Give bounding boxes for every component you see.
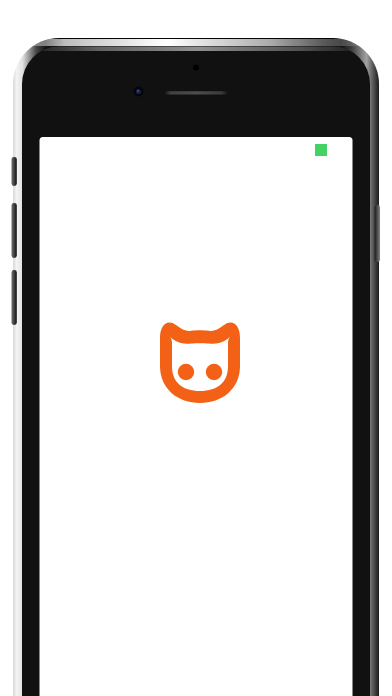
button[interactable]: App splash screen: [0, 0, 392, 696]
